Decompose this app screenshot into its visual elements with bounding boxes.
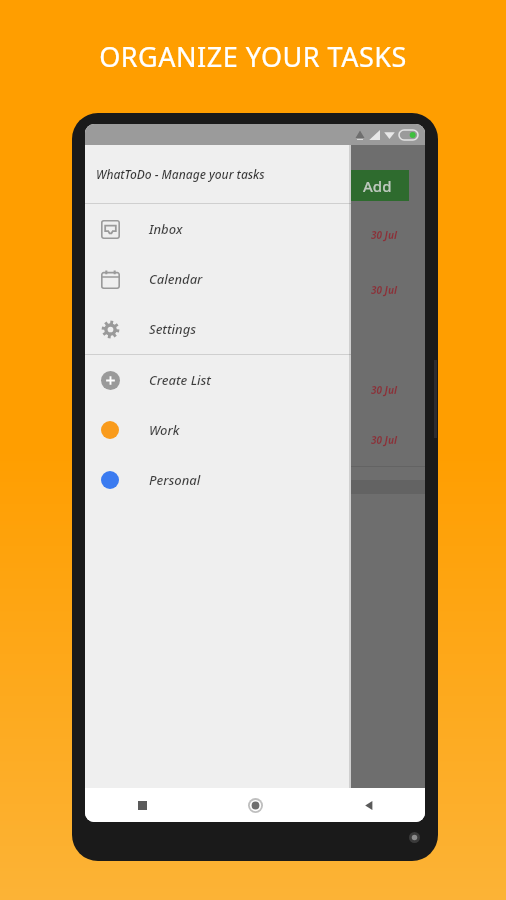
staticText: Work — [149, 421, 180, 439]
staticText: WhatToDo - Manage your tasks — [96, 166, 265, 182]
staticText: Personal — [149, 471, 201, 489]
button[interactable]: Home — [199, 788, 312, 822]
staticText: Inbox — [149, 220, 183, 238]
button[interactable]: Add — [345, 170, 409, 201]
button[interactable]: Settings — [85, 304, 351, 354]
button[interactable]: Create List — [85, 355, 351, 405]
button[interactable]: Personal — [85, 455, 351, 505]
button[interactable]: Recent apps — [85, 788, 199, 822]
staticText: 30 Jul — [371, 433, 397, 447]
staticText: 30 Jul — [371, 383, 397, 397]
staticText: Add — [363, 176, 392, 196]
staticText: 30 Jul — [371, 283, 397, 297]
button[interactable]: Back — [312, 788, 425, 822]
button[interactable]: Calendar — [85, 254, 351, 304]
staticText: Calendar — [149, 270, 203, 288]
staticText: Settings — [149, 320, 197, 338]
button[interactable]: Work — [85, 405, 351, 455]
staticText: ORGANIZE YOUR TASKS — [99, 38, 407, 75]
staticText: 30 Jul — [371, 228, 397, 242]
button[interactable]: Inbox — [85, 204, 351, 254]
staticText: Create List — [149, 371, 211, 389]
